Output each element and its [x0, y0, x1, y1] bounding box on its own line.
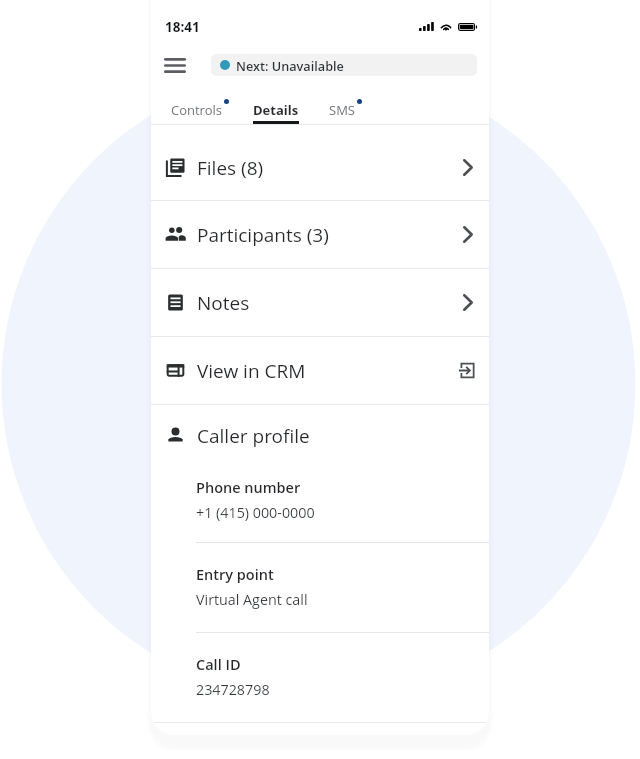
button[interactable]: Notes — [151, 269, 489, 336]
other: Open Participants (3) — [458, 225, 477, 244]
button[interactable]: Next: Unavailable — [211, 54, 477, 76]
staticText: 234728798 — [196, 680, 270, 699]
staticText: 18:41 — [165, 18, 200, 36]
staticText: Phone number — [196, 478, 301, 498]
button[interactable]: Details — [238, 86, 314, 125]
staticText: Controls — [171, 101, 223, 119]
button[interactable]: Files (8) — [151, 125, 489, 200]
other: Open Notes — [458, 293, 477, 312]
button[interactable]: View in CRM — [151, 337, 489, 404]
staticText: Next: Unavailable — [236, 57, 344, 74]
staticText: Details — [253, 101, 299, 119]
staticText: +1 (415) 000-0000 — [196, 503, 315, 522]
staticText: Call ID — [196, 655, 241, 675]
staticText: Notes — [197, 290, 250, 316]
staticText: Entry point — [196, 565, 274, 585]
button[interactable]: SMS — [314, 86, 371, 125]
other: Open Files (8) — [458, 158, 477, 177]
staticText: Virtual Agent call — [196, 590, 308, 609]
staticText: View in CRM — [197, 358, 306, 384]
staticText: SMS — [329, 101, 356, 119]
staticText: Files (8) — [197, 155, 264, 181]
staticText: Caller profile — [197, 423, 310, 449]
button[interactable]: Controls — [156, 86, 238, 125]
staticText: Participants (3) — [197, 222, 329, 248]
button[interactable]: Participants (3) — [151, 201, 489, 268]
button[interactable]: Open navigation menu — [157, 47, 193, 83]
